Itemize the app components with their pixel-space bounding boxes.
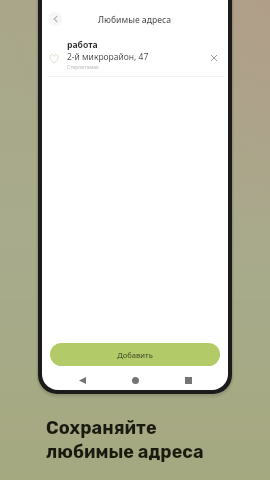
button[interactable]: Назад bbox=[48, 12, 62, 26]
button[interactable]: Добавить bbox=[50, 343, 220, 366]
button[interactable]: Назад bbox=[73, 371, 92, 390]
button[interactable]: Домой bbox=[126, 371, 145, 390]
staticText: любимые адреса bbox=[46, 441, 204, 462]
staticText: 2-й микрорайон, 47 bbox=[67, 51, 149, 63]
staticText: Добавить bbox=[117, 350, 153, 360]
button[interactable]: Удалить bbox=[204, 48, 224, 68]
staticText: Любимые адреса bbox=[98, 14, 172, 26]
button[interactable]: Обзор bbox=[179, 371, 198, 390]
staticText: работа bbox=[67, 39, 98, 51]
staticText: Сохраняйте bbox=[46, 417, 157, 438]
other: Избранное bbox=[49, 54, 59, 63]
button[interactable]: работа bbox=[67, 39, 197, 73]
staticText: Стерлитамак bbox=[67, 64, 99, 71]
